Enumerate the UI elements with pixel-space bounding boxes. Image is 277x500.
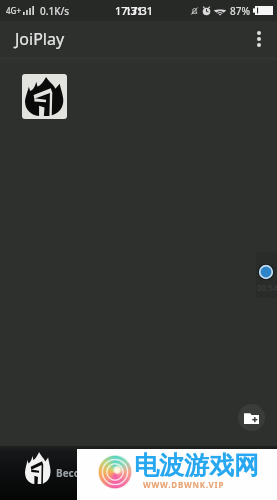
staticText: 电波游戏网 — [134, 450, 259, 481]
button[interactable]: Add game — [238, 404, 265, 431]
staticText: 4G+ — [6, 5, 21, 16]
staticText: 00:54 — [257, 282, 277, 293]
button[interactable]: Overlay bubble — [258, 264, 274, 280]
staticText: 17:31 — [125, 3, 154, 18]
staticText: 17:31 — [115, 3, 144, 18]
staticText: 0.1K/s — [40, 4, 70, 18]
staticText: WWW.DBWNK.VIP — [143, 479, 225, 490]
button[interactable]: More options — [241, 21, 277, 57]
staticText: Becom — [56, 466, 90, 480]
staticText: JoiPlay — [15, 28, 65, 50]
staticText: 87% — [230, 4, 250, 18]
button[interactable]: Game — [22, 74, 67, 119]
